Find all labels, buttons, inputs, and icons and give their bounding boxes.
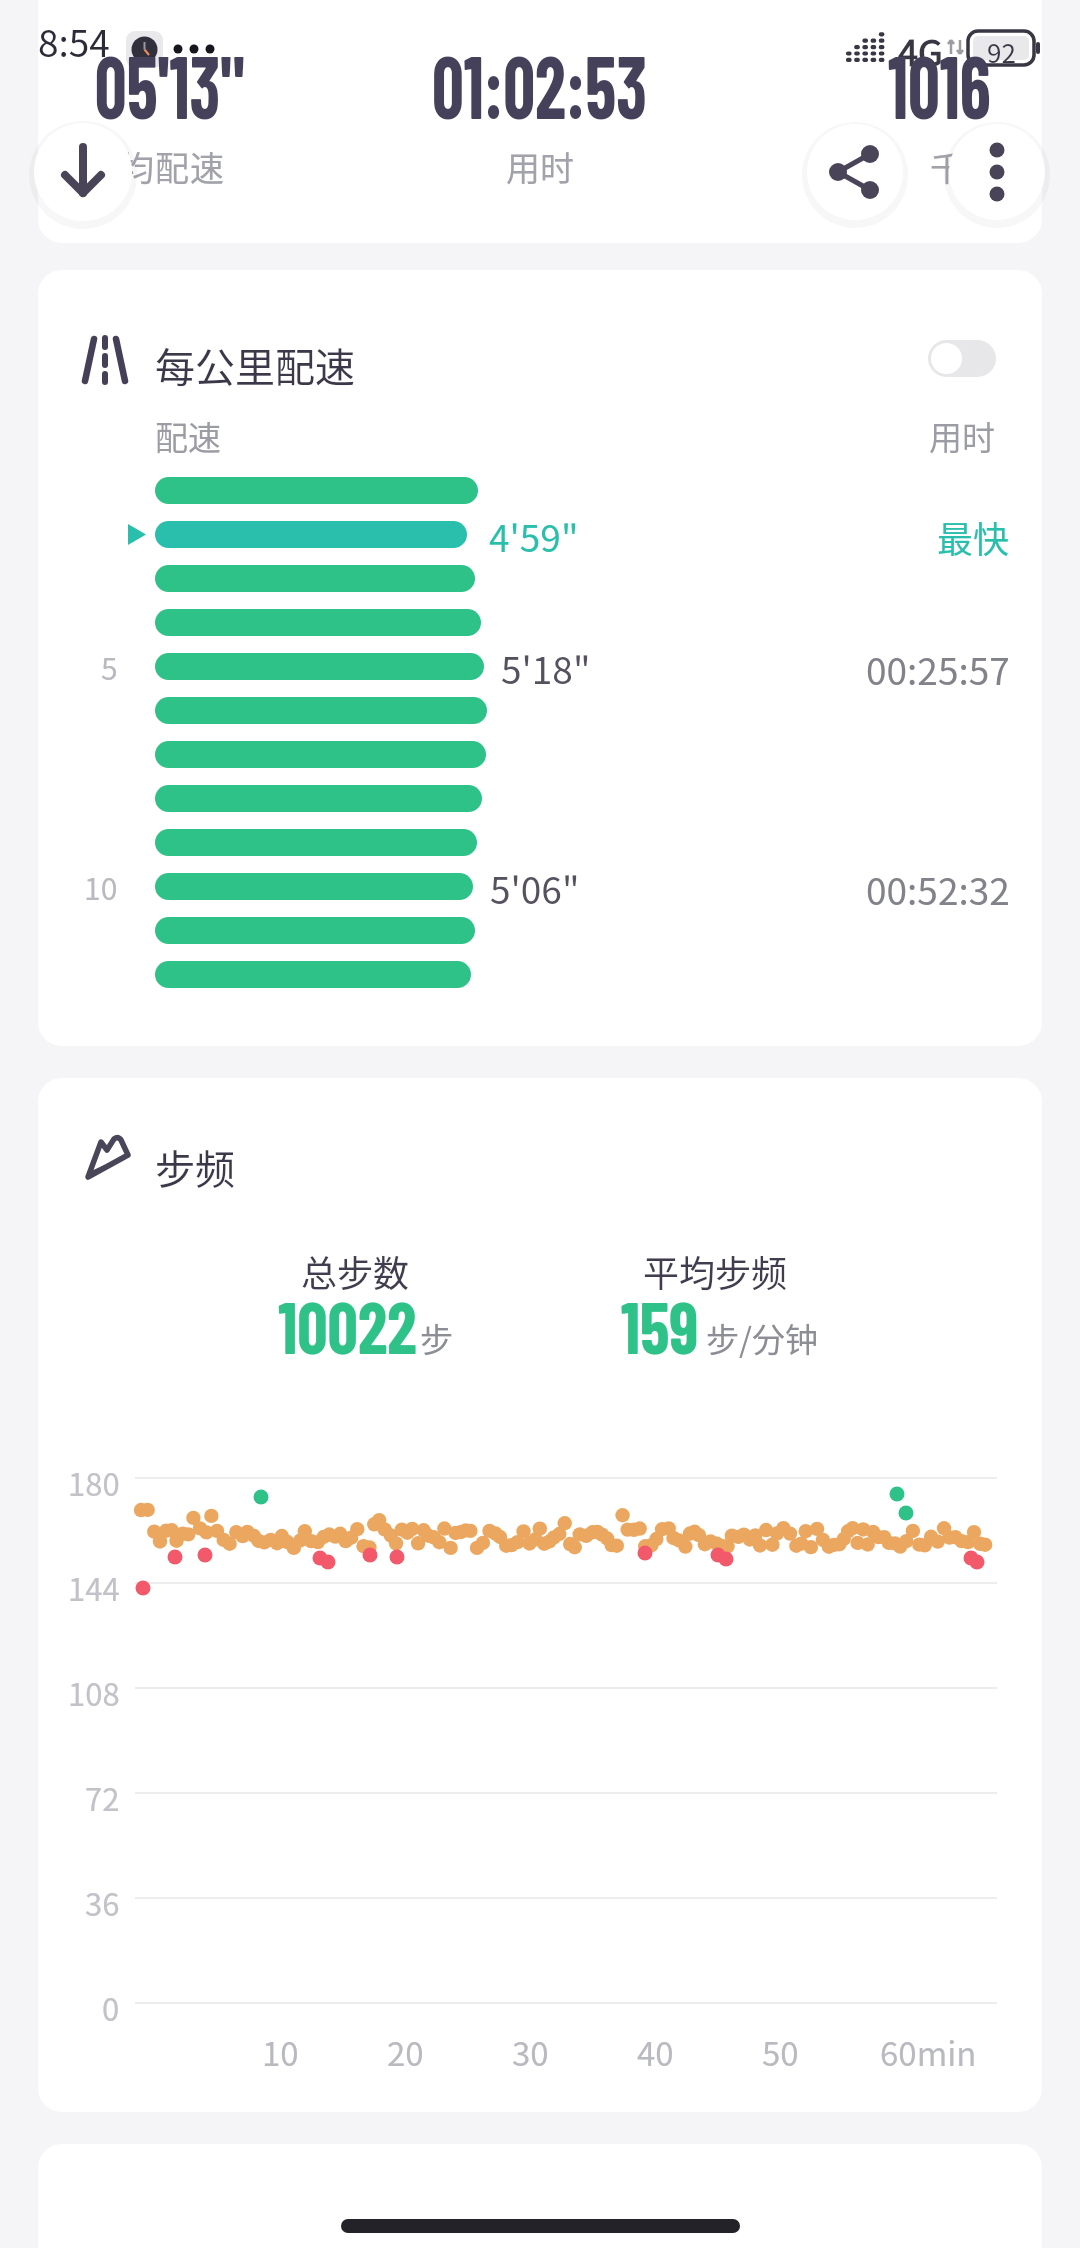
staticText: 10022	[278, 1282, 417, 1368]
staticText: 5'18"	[501, 641, 591, 695]
staticText: 01:02:53	[432, 31, 647, 137]
staticText: 00:52:32	[866, 862, 1010, 916]
staticText: 108	[68, 1670, 120, 1715]
staticText: 最快	[937, 511, 1010, 563]
staticText: 配速	[155, 412, 221, 460]
staticText: 50	[762, 2028, 799, 2076]
staticText: 10	[84, 865, 118, 908]
staticText: 用时	[506, 142, 574, 191]
staticText: 步频	[155, 1138, 235, 1196]
staticText: 10	[262, 2028, 299, 2076]
staticText: 平均步频	[643, 1245, 788, 1297]
staticText: 总步数	[301, 1245, 410, 1297]
staticText: 30	[512, 2028, 549, 2076]
staticText: 36	[85, 1880, 120, 1925]
staticText: 千卡	[930, 142, 998, 191]
staticText: 1016	[888, 31, 991, 137]
button[interactable]	[928, 340, 996, 377]
staticText: 5'06"	[490, 861, 580, 915]
staticText: 180	[68, 1460, 120, 1505]
button[interactable]	[34, 123, 132, 221]
button[interactable]	[949, 124, 1045, 220]
staticText: 每公里配速	[155, 336, 355, 394]
staticText: 40	[637, 2028, 674, 2076]
staticText: 92	[987, 33, 1016, 71]
staticText: 步	[420, 1314, 453, 1362]
staticText: 159	[621, 1282, 699, 1368]
staticText: 60min	[880, 2028, 977, 2076]
staticText: 144	[68, 1565, 120, 1610]
staticText: 0	[102, 1985, 120, 2030]
staticText: 00:25:57	[866, 642, 1010, 696]
staticText: 步/分钟	[706, 1314, 818, 1362]
staticText: 用时	[929, 412, 995, 460]
staticText: 4'59"	[489, 509, 579, 563]
staticText: 4G	[898, 24, 943, 76]
button[interactable]	[807, 124, 903, 220]
staticText: 平均配速	[85, 142, 225, 191]
staticText: 20	[387, 2028, 424, 2076]
staticText: 8:54	[38, 14, 110, 68]
staticText: 5	[101, 645, 118, 688]
staticText: 05'13"	[95, 31, 245, 137]
staticText: 72	[85, 1775, 120, 1820]
